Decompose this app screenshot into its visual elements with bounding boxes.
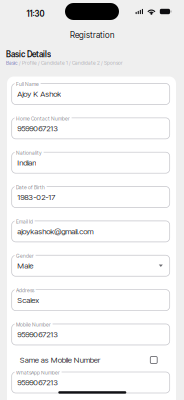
staticText: Male	[17, 261, 33, 270]
staticText: Full Name	[16, 81, 39, 87]
button[interactable]: Scalex	[12, 290, 170, 311]
staticText: ajoykashok@gmail.com	[17, 227, 93, 236]
staticText: Gender	[16, 253, 34, 259]
staticText: 1983-02-17	[17, 192, 55, 202]
button[interactable]: Same as Mobile Number	[20, 354, 157, 365]
button[interactable]: 1983-02-17	[12, 187, 170, 208]
staticText: Indian	[17, 158, 36, 167]
button[interactable]: 9599067213	[12, 324, 170, 345]
staticText: Scalex	[17, 295, 39, 305]
staticText: WhatsApp Number	[16, 370, 60, 376]
staticText: Registration	[70, 30, 114, 40]
staticText: 11:30	[26, 9, 44, 19]
staticText: Basic	[6, 60, 18, 66]
staticText: Ajoy K Ashok	[17, 89, 61, 99]
staticText: Email Id	[16, 219, 33, 225]
staticText: Same as Mobile Number	[20, 355, 101, 365]
staticText: Address	[16, 287, 34, 293]
button[interactable]: Male	[12, 255, 170, 276]
button[interactable]: Ajoy K Ashok	[12, 83, 170, 104]
staticText: / Profile / Candidate 1 / Candidate 2 / …	[18, 60, 123, 66]
staticText: Basic Details	[6, 50, 51, 59]
staticText: Mobile Number	[16, 322, 51, 328]
button[interactable]: Indian	[12, 152, 170, 173]
staticText: 9599067213	[17, 124, 58, 133]
staticText: Nationality	[16, 150, 42, 156]
staticText: 9599067213	[17, 330, 58, 339]
staticText: Date of Birth	[16, 184, 45, 190]
button[interactable]: ajoykashok@gmail.com	[12, 221, 170, 242]
staticText: 9599067213	[17, 378, 58, 387]
button[interactable]: 9599067213	[12, 372, 170, 393]
staticText: Home Contact Number	[16, 115, 70, 122]
button[interactable]: 9599067213	[12, 118, 170, 139]
